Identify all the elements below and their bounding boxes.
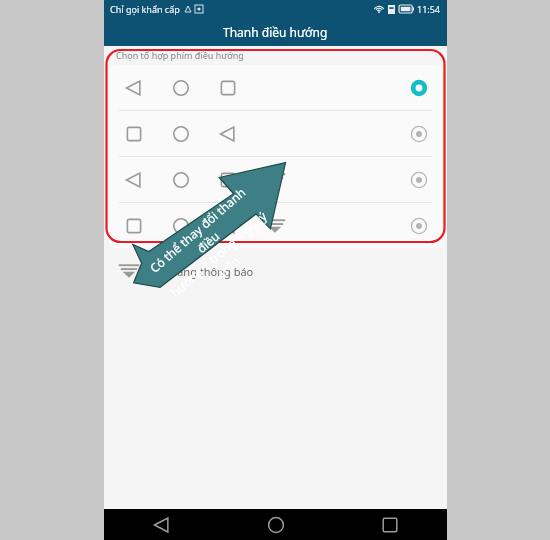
other: Select option bbox=[406, 213, 432, 239]
button[interactable]: Select option bbox=[109, 157, 442, 202]
button[interactable]: Recents bbox=[333, 509, 447, 540]
staticText: Chọn tổ hợp phím điều hướng bbox=[116, 49, 244, 61]
button[interactable]: Home bbox=[219, 509, 333, 540]
staticText: Chỉ gọi khẩn cấp bbox=[110, 3, 180, 15]
staticText: Có thể thay đổi thanh điều hướng 1 trong… bbox=[137, 176, 289, 320]
other: Select option bbox=[406, 167, 432, 193]
button[interactable]: Back bbox=[104, 509, 219, 540]
staticText: : Mở bảng thông báo bbox=[145, 264, 254, 279]
other: Select option bbox=[406, 75, 432, 101]
other: Select option bbox=[406, 121, 432, 147]
button[interactable]: Select option bbox=[109, 203, 442, 248]
staticText: Thanh điều hướng bbox=[223, 24, 328, 40]
staticText: 11:54 bbox=[417, 3, 441, 15]
button[interactable]: Select option bbox=[109, 111, 442, 156]
button[interactable]: Select option bbox=[109, 65, 442, 110]
